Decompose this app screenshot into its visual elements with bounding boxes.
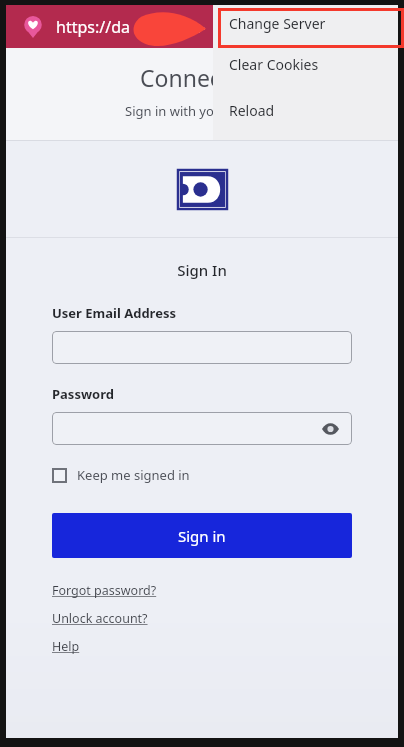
staticText: https://da c- — [56, 16, 206, 38]
staticText: Sign in with your account — [125, 102, 280, 120]
button[interactable]: Clear Cookies — [213, 41, 398, 87]
other: Show password — [322, 423, 339, 435]
staticText: Clear Cookies — [229, 55, 319, 74]
other: Site security — [22, 16, 44, 38]
staticText: Keep me signed in — [77, 466, 190, 484]
staticText: Connecting — [140, 62, 264, 93]
staticText: Password — [52, 385, 114, 403]
staticText: Change Server — [229, 14, 326, 33]
staticText: Sign in — [178, 526, 226, 546]
staticText: Help — [52, 638, 80, 655]
button[interactable] — [52, 331, 352, 364]
button[interactable]: Keep me signed in — [52, 464, 190, 486]
staticText: Reload — [229, 101, 275, 120]
staticText: Unlock account? — [52, 610, 148, 627]
button[interactable]: Show password — [52, 412, 352, 445]
staticText: Forgot password? — [52, 582, 157, 599]
other: Company logo — [178, 170, 227, 209]
button[interactable]: Change Server — [213, 5, 398, 41]
button[interactable]: Forgot password? — [52, 582, 157, 599]
button[interactable]: Reload — [213, 87, 398, 133]
staticText: Sign In — [6, 260, 398, 280]
button[interactable]: Help — [52, 638, 80, 655]
button[interactable]: Sign in — [52, 513, 352, 558]
staticText: User Email Address — [52, 304, 176, 322]
button[interactable]: Unlock account? — [52, 610, 148, 627]
